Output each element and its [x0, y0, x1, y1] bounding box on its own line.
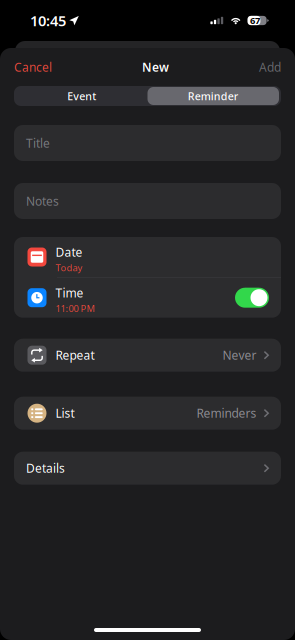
button[interactable]: Repeat: [14, 339, 281, 372]
staticText: Never: [223, 347, 257, 363]
staticText: Today: [55, 261, 82, 274]
staticText: Reminder: [188, 89, 239, 103]
button[interactable]: Time enabled: [235, 288, 269, 308]
staticText: Details: [26, 460, 65, 476]
button[interactable]: Reminder: [147, 87, 279, 105]
staticText: Event: [67, 89, 96, 103]
button[interactable]: Add: [259, 53, 281, 81]
staticText: Time: [55, 285, 83, 301]
staticText: List: [55, 405, 74, 421]
staticText: 11:00 PM: [55, 302, 94, 315]
button[interactable]: Details: [14, 452, 281, 485]
staticText: Cancel: [14, 59, 52, 75]
staticText: New: [142, 59, 169, 75]
button[interactable]: Cancel: [14, 53, 52, 81]
staticText: Reminders: [197, 405, 257, 421]
staticText: Title: [26, 135, 50, 151]
staticText: Date: [55, 244, 82, 260]
staticText: Add: [259, 59, 281, 75]
staticText: 10:45: [30, 11, 66, 30]
staticText: Notes: [26, 193, 59, 209]
button[interactable]: List: [14, 397, 281, 430]
button[interactable]: Date: [14, 237, 281, 277]
staticText: Repeat: [55, 347, 94, 363]
staticText: 67: [250, 14, 260, 27]
button[interactable]: Event: [16, 87, 147, 105]
